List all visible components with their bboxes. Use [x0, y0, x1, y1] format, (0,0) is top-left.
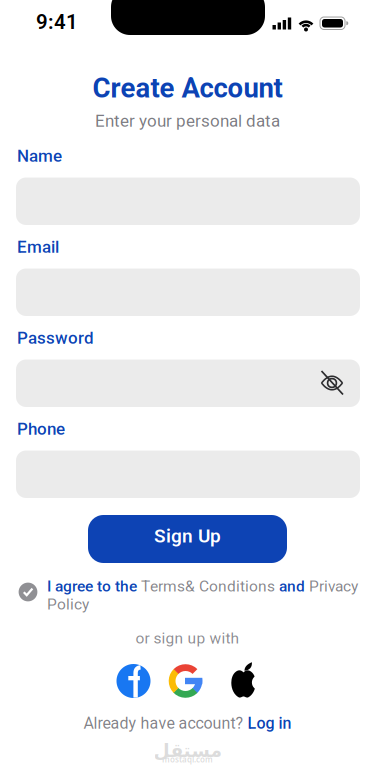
- staticText: Enter your personal data: [95, 111, 280, 131]
- button[interactable]: Password text field: [16, 359, 360, 407]
- button[interactable]: Sign Up: [88, 515, 287, 563]
- button[interactable]: Sign up with Facebook: [111, 659, 155, 703]
- button[interactable]: Show password: [310, 360, 354, 404]
- staticText: Terms& Conditions: [141, 577, 275, 595]
- staticText: and: [275, 577, 309, 595]
- staticText: Password: [17, 328, 94, 348]
- button[interactable]: Terms& Conditions: [141, 577, 275, 595]
- button[interactable]: Privacy: [309, 577, 358, 595]
- staticText: mostaql.com: [162, 754, 213, 765]
- staticText: مستقل: [153, 740, 222, 761]
- staticText: Log in: [247, 714, 291, 733]
- button[interactable]: Sign up with Google: [163, 659, 207, 703]
- staticText: Already have account?: [83, 714, 247, 733]
- button[interactable]: Sign up with Apple: [221, 659, 265, 703]
- button[interactable]: I agree to the terms: [12, 577, 44, 607]
- button[interactable]: Log in: [247, 714, 291, 733]
- staticText: 9:41: [36, 10, 78, 34]
- staticText: Privacy: [309, 577, 358, 595]
- staticText: Policy: [47, 595, 89, 613]
- staticText: or sign up with: [135, 629, 239, 647]
- staticText: Name: [17, 146, 62, 166]
- staticText: I agree to the: [47, 577, 141, 595]
- button[interactable]: Policy: [47, 595, 89, 613]
- staticText: Sign Up: [154, 525, 221, 547]
- staticText: Email: [17, 237, 59, 257]
- staticText: Create Account: [92, 72, 282, 104]
- staticText: Phone: [17, 419, 65, 439]
